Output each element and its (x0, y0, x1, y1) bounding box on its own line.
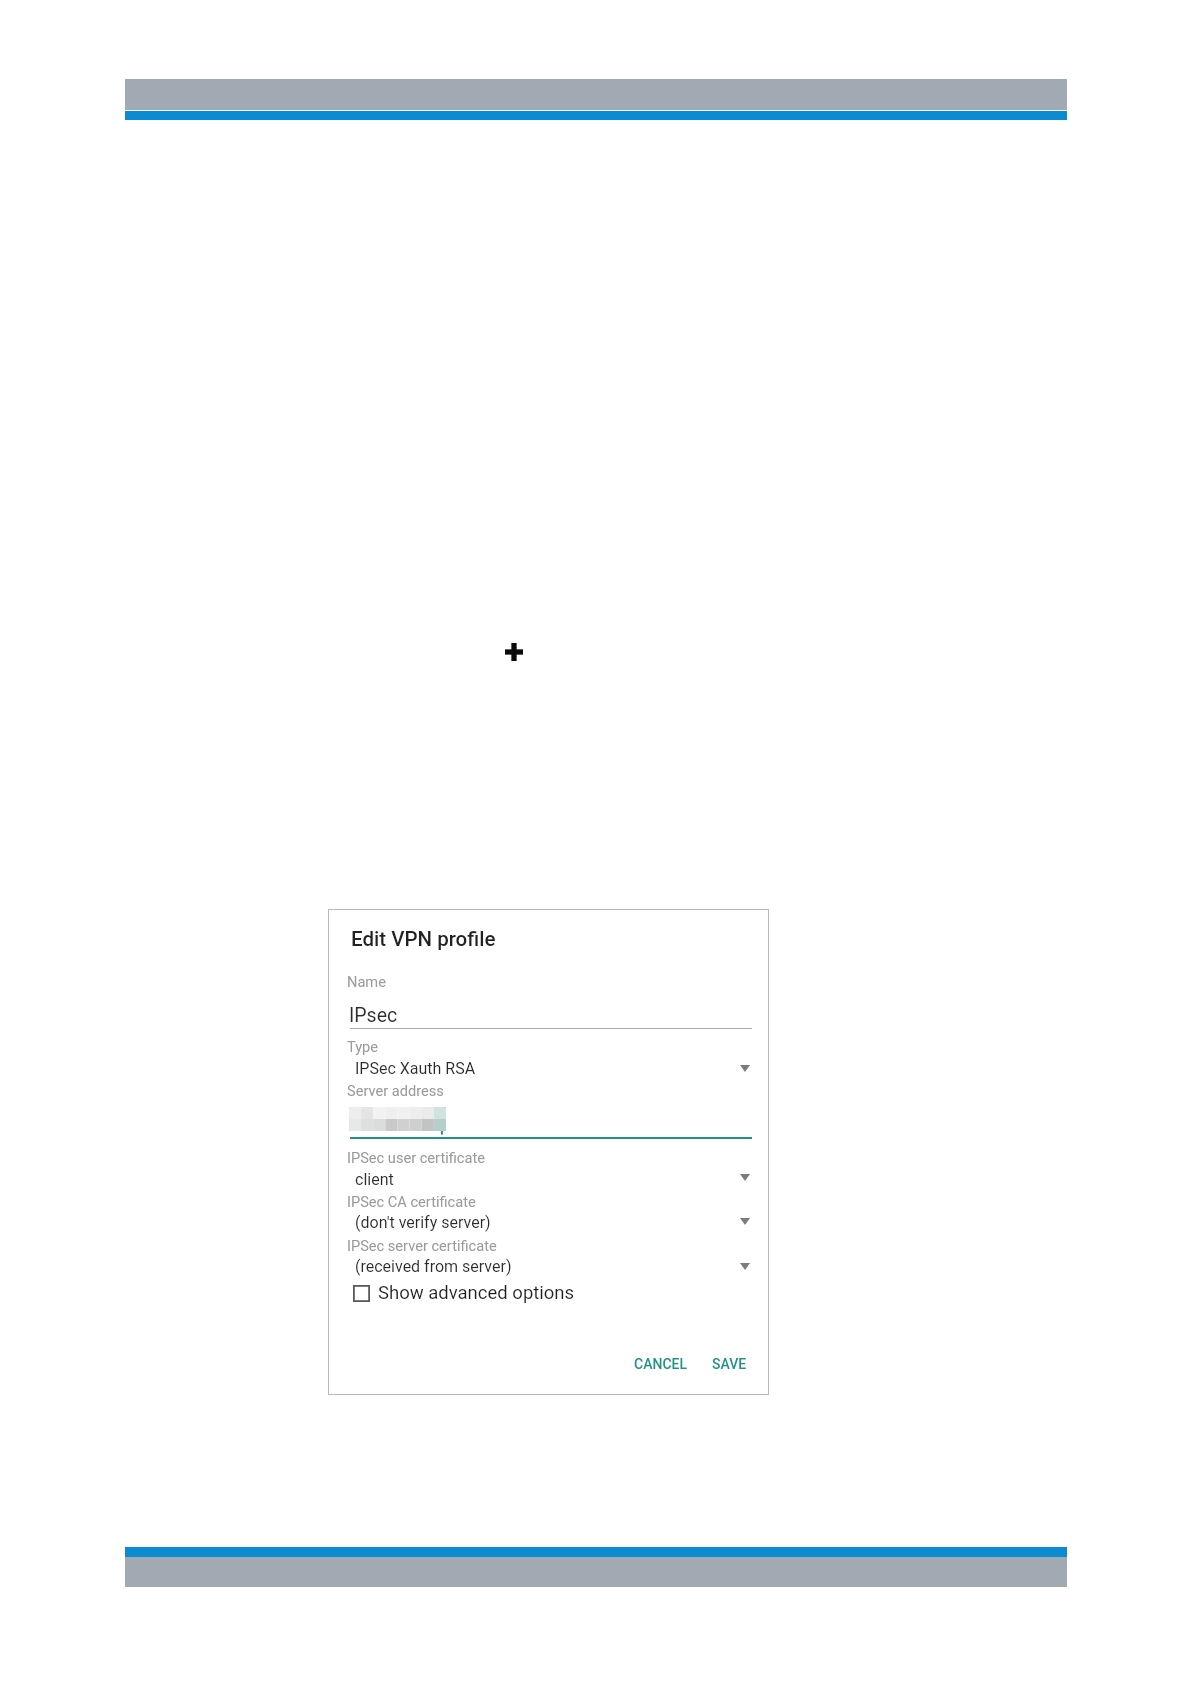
button[interactable]: Open dropdown (346, 1165, 752, 1191)
staticText: (don't verify server) (355, 1213, 491, 1232)
staticText: IPsec (349, 1004, 398, 1027)
staticText: SAVE (712, 1356, 747, 1372)
staticText: IPSec CA certificate (347, 1193, 476, 1210)
staticText: Type (347, 1038, 379, 1055)
button[interactable]: Show advanced options (353, 1282, 575, 1304)
button[interactable]: SAVE (706, 1350, 753, 1378)
button[interactable]: Open dropdown (346, 1054, 752, 1080)
button[interactable]: Open dropdown (346, 1209, 752, 1235)
staticText: CANCEL (634, 1356, 688, 1372)
button[interactable]: Open dropdown (346, 1253, 752, 1279)
staticText: Show advanced options (378, 1282, 575, 1304)
button[interactable]: Server address (348, 1102, 752, 1139)
staticText: client (355, 1170, 394, 1189)
other: Add (505, 643, 523, 661)
staticText: Name (347, 973, 386, 990)
staticText: IPSec server certificate (347, 1237, 497, 1254)
staticText: IPSec user certificate (347, 1149, 485, 1166)
staticText: IPSec Xauth RSA (355, 1059, 476, 1078)
staticText: (received from server) (355, 1257, 512, 1276)
staticText: Server address (347, 1082, 444, 1099)
button[interactable]: CANCEL (628, 1350, 694, 1378)
staticText: Edit VPN profile (351, 927, 496, 951)
